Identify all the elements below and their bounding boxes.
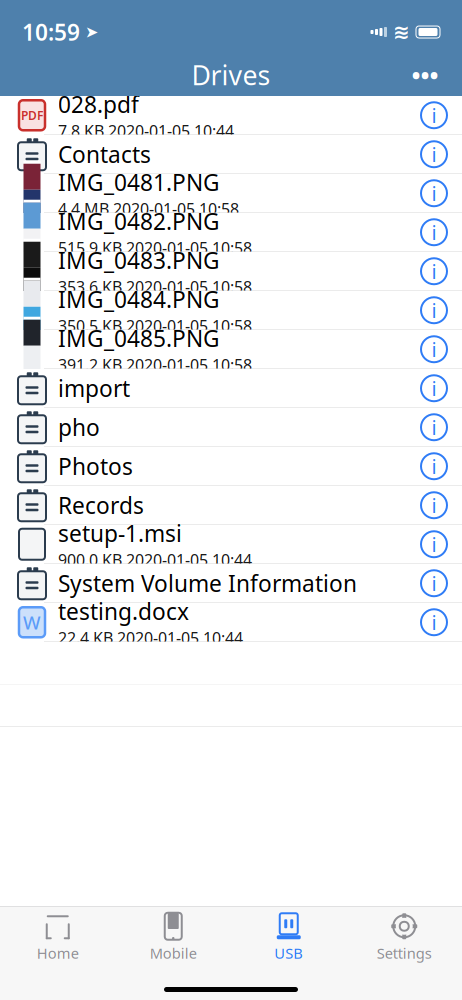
staticText: Settings <box>377 943 432 963</box>
staticText: W <box>23 610 41 635</box>
button[interactable]: More Info <box>406 249 462 293</box>
staticText: i <box>431 336 436 363</box>
button[interactable]: import <box>0 369 462 408</box>
button[interactable]: More Info <box>406 483 462 527</box>
button[interactable]: PDF <box>0 96 462 135</box>
staticText: i <box>431 414 436 441</box>
button[interactable]: Photos <box>0 447 462 486</box>
staticText: ≋ <box>393 21 410 43</box>
staticText: USB <box>274 943 303 963</box>
button[interactable]: More Info <box>406 366 462 410</box>
staticText: IMG_0481.PNG <box>58 167 220 197</box>
staticText: Records <box>58 490 144 520</box>
staticText: System Volume Information <box>58 568 357 598</box>
staticText: 350.5 KB 2020-01-05 10:58 <box>58 315 252 336</box>
staticText: i <box>431 531 436 558</box>
staticText: testing.docx <box>58 596 189 626</box>
button[interactable]: Mobile <box>115 912 231 962</box>
button[interactable]: Settings <box>346 912 462 962</box>
staticText: i <box>431 453 436 480</box>
staticText: 391.2 KB 2020-01-05 10:58 <box>58 354 252 375</box>
staticText: 353.6 KB 2020-01-05 10:58 <box>58 276 252 297</box>
button[interactable]: IMG_0483.PNG <box>0 252 462 291</box>
button[interactable]: More Info <box>406 171 462 215</box>
staticText: pho <box>58 412 100 442</box>
staticText: PDF <box>21 107 43 123</box>
staticText: import <box>58 373 130 403</box>
button[interactable]: USB <box>231 912 346 962</box>
button[interactable]: More Info <box>406 93 462 137</box>
button[interactable]: System Volume Information <box>0 564 462 603</box>
staticText: 515.9 KB 2020-01-05 10:58 <box>58 237 252 258</box>
staticText: Drives <box>191 57 270 93</box>
button[interactable]: IMG_0481.PNG <box>0 174 462 213</box>
staticText: i <box>431 297 436 324</box>
staticText: i <box>431 141 436 168</box>
staticText: IMG_0484.PNG <box>58 284 220 314</box>
button[interactable]: Contacts <box>0 135 462 174</box>
staticText: i <box>431 492 436 519</box>
button[interactable]: pho <box>0 408 462 447</box>
button[interactable]: More Info <box>406 288 462 332</box>
button[interactable]: Home <box>0 912 115 962</box>
staticText: ••• <box>411 59 438 91</box>
button[interactable]: More Info <box>406 444 462 488</box>
staticText: 4.4 MB 2020-01-05 10:58 <box>58 198 239 219</box>
staticText: i <box>431 102 436 129</box>
staticText: 10:59 <box>22 17 80 47</box>
staticText: i <box>431 219 436 246</box>
staticText: 7.8 KB 2020-01-05 10:44 <box>58 120 234 141</box>
staticText: IMG_0483.PNG <box>58 245 220 275</box>
staticText: 028.pdf <box>58 89 139 119</box>
staticText: i <box>431 375 436 402</box>
button[interactable]: More Info <box>406 405 462 449</box>
button[interactable]: IMG_0484.PNG <box>0 291 462 330</box>
staticText: i <box>431 180 436 207</box>
staticText: Photos <box>58 451 133 481</box>
staticText: Contacts <box>58 139 151 169</box>
button[interactable]: setup-1.msi <box>0 525 462 564</box>
staticText: i <box>431 570 436 597</box>
button[interactable]: More Info <box>406 132 462 176</box>
staticText: Mobile <box>150 943 197 963</box>
button[interactable]: W <box>0 603 462 642</box>
staticText: ➤ <box>85 23 98 41</box>
button[interactable]: Records <box>0 486 462 525</box>
button[interactable]: IMG_0485.PNG <box>0 330 462 369</box>
button[interactable]: More Info <box>406 522 462 566</box>
staticText: i <box>431 609 436 636</box>
button[interactable]: More Info <box>406 327 462 371</box>
staticText: IMG_0485.PNG <box>58 323 220 353</box>
staticText: Home <box>37 943 79 963</box>
button[interactable]: More options <box>398 55 452 95</box>
staticText: setup-1.msi <box>58 518 182 548</box>
button[interactable]: More Info <box>406 210 462 254</box>
staticText: IMG_0482.PNG <box>58 206 220 236</box>
staticText: 900.0 KB 2020-01-05 10:44 <box>58 549 252 570</box>
staticText: i <box>431 258 436 285</box>
staticText: 22.4 KB 2020-01-05 10:44 <box>58 627 243 648</box>
button[interactable]: More Info <box>406 561 462 605</box>
button[interactable]: More Info <box>406 600 462 644</box>
button[interactable]: IMG_0482.PNG <box>0 213 462 252</box>
